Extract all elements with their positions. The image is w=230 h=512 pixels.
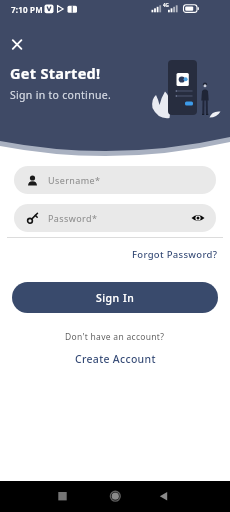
button[interactable]: Sign In	[12, 282, 218, 313]
staticText: 7:10 PM	[11, 4, 43, 15]
staticText: Sign in to continue.	[10, 88, 112, 102]
button[interactable]: Forgot Password?	[132, 248, 218, 261]
button[interactable]	[156, 488, 172, 504]
staticText: 4G	[163, 2, 169, 8]
staticText: Sign In	[96, 291, 135, 305]
button[interactable]	[191, 211, 205, 225]
button[interactable]	[54, 488, 70, 504]
staticText: Username*	[48, 174, 101, 186]
staticText: Don't have an account?	[65, 331, 165, 343]
button[interactable]: Create Account	[75, 352, 156, 366]
staticText: Forgot Password?	[132, 248, 218, 261]
button[interactable]: Username*	[14, 166, 216, 194]
staticText: Password*	[48, 212, 98, 224]
button[interactable]: Password*	[14, 204, 216, 232]
staticText: Get Started!	[10, 63, 101, 83]
button[interactable]	[107, 488, 124, 505]
staticText: Create Account	[75, 352, 156, 366]
button[interactable]	[9, 36, 26, 53]
